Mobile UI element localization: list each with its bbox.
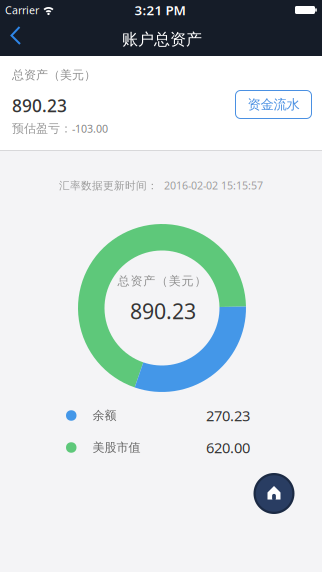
staticText: 总资产（美元） [12, 68, 96, 82]
button[interactable]: Home [253, 472, 295, 514]
button[interactable]: 资金流水 [235, 90, 312, 119]
staticText: 890.23 [130, 297, 196, 325]
staticText: 账户总资产 [122, 30, 202, 49]
staticText: 总资产（美元） [118, 274, 206, 288]
button[interactable]: Back [0, 20, 32, 51]
staticText: 890.23 [12, 94, 67, 117]
staticText: 余额 [92, 408, 116, 423]
staticText: 3:21 PM [134, 1, 185, 19]
staticText: 620.00 [206, 438, 250, 457]
staticText: 美股市值 [92, 440, 140, 455]
staticText: 270.23 [206, 406, 250, 425]
staticText: -103.00 [72, 121, 108, 136]
staticText: 汇率数据更新时间： 2016-02-02 15:15:57 [59, 178, 263, 192]
staticText: 预估盈亏： [12, 121, 72, 136]
staticText: Carrier [5, 3, 39, 17]
staticText: 资金流水 [247, 96, 299, 113]
